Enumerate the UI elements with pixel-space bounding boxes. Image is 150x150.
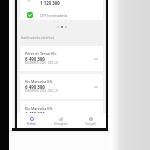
button[interactable]: 1 120 300 <box>20 0 103 20</box>
button[interactable]: Péter és Társai Kft. <box>20 46 103 71</box>
staticText: Péter és Társai Kft. <box>25 51 57 56</box>
staticText: Szolgált. <box>85 122 97 126</box>
staticText: ESEDÉKES: 2021. DEC. 21. <box>25 89 60 93</box>
staticText: 1 120 300 <box>40 0 60 6</box>
button[interactable]: Fiókok <box>17 113 46 128</box>
button[interactable]: Kis Marcsika Kft. <box>20 74 103 99</box>
staticText: Fiókok <box>27 122 36 126</box>
staticText: Mozgások <box>54 122 68 126</box>
staticText: HUF <box>39 86 45 90</box>
staticText: HUF <box>39 58 45 62</box>
staticText: 6 490 300 <box>25 84 45 90</box>
staticText: ESEDÉKES: 2021. DEC. 21. <box>25 61 60 65</box>
staticText: Kis Marcsika Kft. <box>25 79 54 84</box>
staticText: HUF <box>53 2 59 6</box>
staticText: 6 490 300 <box>25 111 45 117</box>
staticText: ESEDÉKES: 2021. DEC. 21. <box>25 116 60 120</box>
button[interactable]: Kis Marcsika Kft. <box>20 101 103 126</box>
button[interactable]: Expand <box>91 82 100 91</box>
staticText: 6 490 300 <box>25 56 45 62</box>
button[interactable]: Expand <box>91 109 100 118</box>
staticText: Bankszámla-történet <box>21 35 55 40</box>
staticText: Kis Marcsika Kft. <box>25 106 54 111</box>
button[interactable]: Mozgások <box>46 113 76 128</box>
button[interactable]: Szolgált. <box>76 113 106 128</box>
button[interactable]: Expand <box>91 54 100 63</box>
staticText: OTP forintszámla <box>40 13 68 18</box>
